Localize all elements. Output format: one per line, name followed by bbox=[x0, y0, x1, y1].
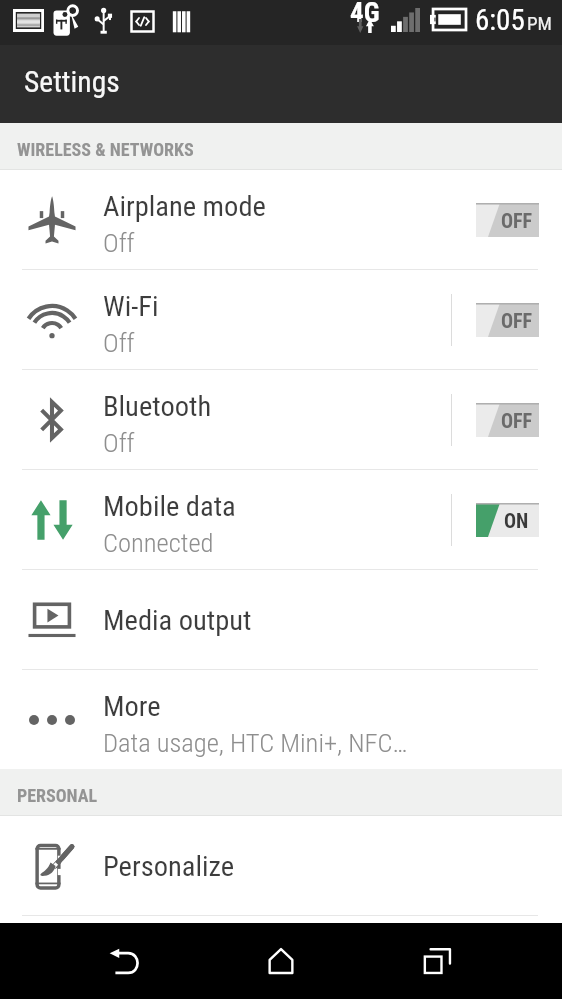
staticText: PERSONAL bbox=[17, 785, 98, 806]
staticText: Media output bbox=[103, 604, 252, 637]
button[interactable]: Recent apps bbox=[398, 923, 476, 999]
staticText: More bbox=[103, 690, 161, 723]
staticText: Off bbox=[103, 427, 135, 458]
button[interactable]: Home bbox=[242, 923, 320, 999]
staticText: Personalize bbox=[103, 850, 235, 883]
button[interactable]: Switch off bbox=[476, 203, 539, 237]
staticText: 6:05 bbox=[475, 3, 525, 37]
staticText: Settings bbox=[24, 65, 120, 100]
button[interactable]: Switch off bbox=[476, 403, 539, 437]
staticText: Off bbox=[103, 327, 135, 358]
staticText: Off bbox=[103, 227, 135, 258]
staticText: Airplane mode bbox=[103, 190, 266, 223]
button[interactable]: Settings bbox=[0, 45, 562, 123]
staticText: OFF bbox=[501, 209, 533, 232]
button[interactable]: Switch on bbox=[476, 503, 539, 537]
staticText: PM bbox=[527, 12, 552, 34]
staticText: OFF bbox=[501, 409, 533, 432]
staticText: 4G bbox=[350, 0, 380, 29]
button[interactable]: Mobile data bbox=[0, 470, 562, 569]
button[interactable]: Wi-Fi bbox=[0, 270, 562, 369]
staticText: Bluetooth bbox=[103, 390, 212, 423]
staticText: ON bbox=[504, 509, 529, 532]
staticText: OFF bbox=[501, 309, 533, 332]
button[interactable]: Back bbox=[86, 923, 164, 999]
staticText: WIRELESS & NETWORKS bbox=[17, 139, 194, 160]
button[interactable]: Personalize bbox=[0, 816, 562, 915]
staticText: Mobile data bbox=[103, 490, 236, 523]
staticText: Data usage, HTC Mini+, NFC… bbox=[103, 727, 408, 758]
button[interactable]: More bbox=[0, 670, 562, 769]
button[interactable]: Airplane mode bbox=[0, 170, 562, 269]
button[interactable]: Media output bbox=[0, 570, 562, 669]
button[interactable]: Bluetooth bbox=[0, 370, 562, 469]
staticText: Connected bbox=[103, 527, 214, 558]
staticText: Wi-Fi bbox=[103, 290, 159, 323]
button[interactable]: Switch off bbox=[476, 303, 539, 337]
